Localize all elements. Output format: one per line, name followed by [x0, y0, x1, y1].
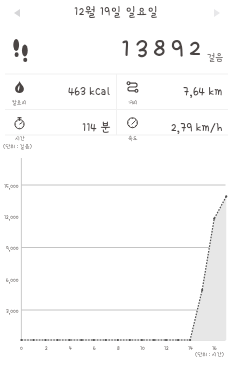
staticText: 463 kcal [68, 85, 111, 98]
staticText: 3,000 [6, 308, 19, 314]
button[interactable]: 속도 [118, 110, 229, 136]
staticText: 7,64 km [183, 85, 223, 98]
staticText: 15,000 [4, 183, 19, 189]
button[interactable]: 13892 [0, 30, 233, 70]
staticText: 8 [117, 345, 120, 351]
staticText: 9,000 [6, 245, 19, 251]
staticText: 10 [140, 345, 145, 351]
staticText: 12,000 [4, 214, 19, 220]
staticText: 16 [212, 345, 217, 351]
staticText: 시간 [15, 135, 25, 141]
staticText: 걸음 [207, 52, 224, 62]
staticText: 114 분 [82, 121, 111, 134]
staticText: 13892 [121, 35, 207, 63]
staticText: 14 [188, 345, 193, 351]
staticText: (단위 : 시간) [195, 351, 224, 357]
staticText: 4 [69, 345, 72, 351]
staticText: 2 [45, 345, 48, 351]
staticText: 거리 [128, 99, 138, 105]
staticText: 0 [20, 345, 23, 351]
button[interactable]: Next day [203, 1, 231, 25]
button[interactable]: 시간 [5, 110, 117, 136]
staticText: 12월 19일 일요일 [74, 5, 159, 18]
staticText: 6,000 [6, 277, 19, 283]
staticText: 칼로리 [12, 99, 27, 105]
button[interactable]: 거리 [118, 74, 229, 110]
staticText: 12 [164, 345, 169, 351]
button[interactable]: Previous day [3, 1, 31, 25]
button[interactable]: 칼로리 [5, 74, 117, 110]
staticText: 2,79 km/h [171, 121, 223, 134]
staticText: 6 [93, 345, 96, 351]
staticText: (단위 : 걸음) [3, 143, 32, 149]
staticText: 속도 [128, 135, 138, 141]
